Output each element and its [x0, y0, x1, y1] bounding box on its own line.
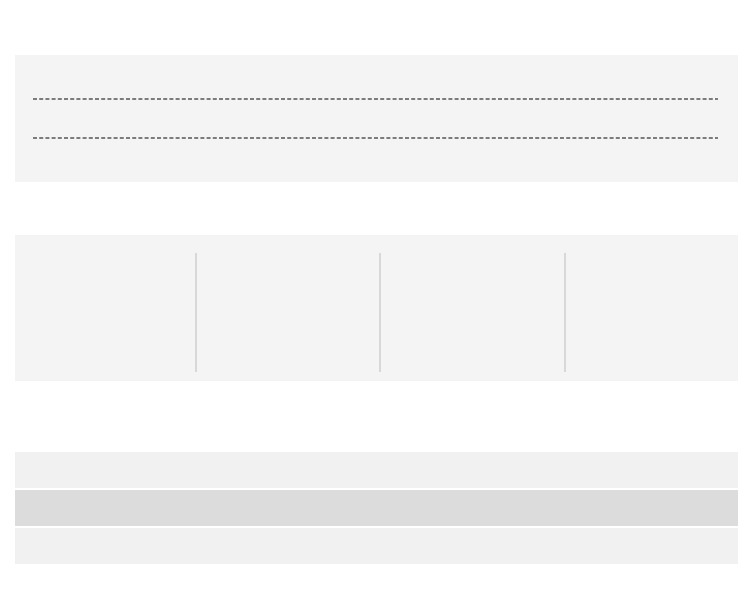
button[interactable]: Content placeholder card: [15, 55, 738, 182]
